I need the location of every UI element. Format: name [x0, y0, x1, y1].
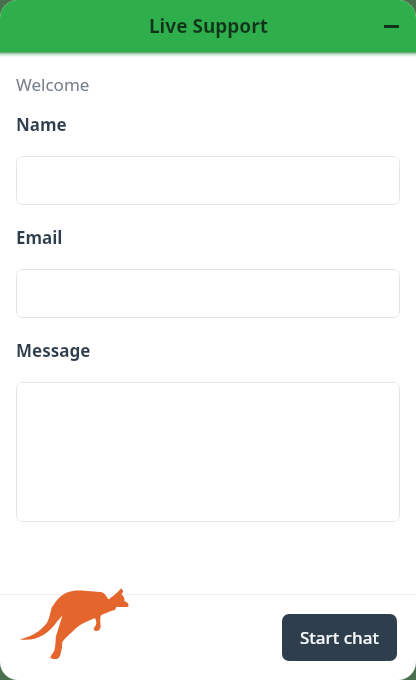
staticText: Email: [16, 226, 63, 249]
button[interactable]: Minimize: [373, 8, 409, 44]
staticText: Live Support: [149, 13, 268, 39]
button[interactable]: [16, 269, 400, 318]
button[interactable]: Start chat: [282, 614, 397, 661]
staticText: Message: [16, 339, 91, 362]
button[interactable]: [16, 382, 400, 522]
button[interactable]: [16, 156, 400, 205]
staticText: Welcome: [16, 73, 90, 96]
staticText: Name: [16, 113, 67, 136]
staticText: Start chat: [300, 626, 379, 649]
